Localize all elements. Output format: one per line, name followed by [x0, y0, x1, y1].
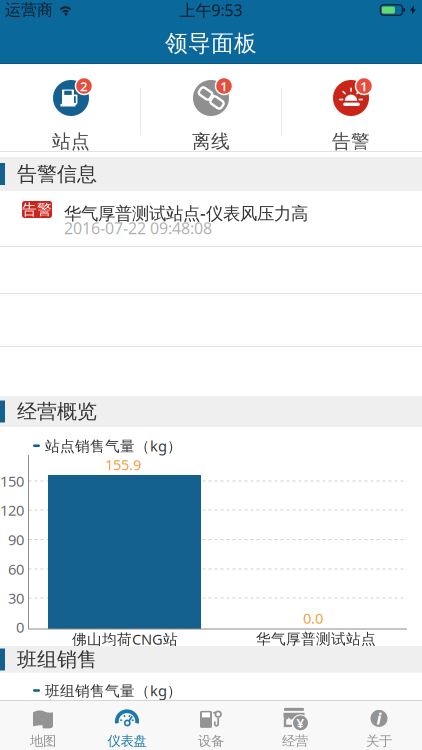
button[interactable]: 1 [141, 64, 281, 151]
button[interactable]: 设备 [169, 701, 253, 750]
staticText: 90 [8, 530, 24, 549]
staticText: 60 [8, 559, 24, 579]
staticText: 站点 [52, 130, 90, 153]
staticText: 仪表盘 [107, 733, 146, 749]
staticText: 领导面板 [165, 30, 257, 57]
staticText: 155.9 [105, 455, 141, 474]
button[interactable]: 地图 [1, 701, 85, 750]
staticText: i [376, 708, 381, 729]
staticText: 告警 [22, 200, 52, 218]
staticText: 1 [360, 77, 368, 95]
staticText: 0.0 [303, 608, 323, 628]
staticText: 华气厚普测试站点 [256, 630, 376, 648]
staticText: 离线 [192, 130, 230, 153]
button[interactable]: 告警 [0, 191, 422, 247]
staticText: 0 [16, 617, 24, 637]
button[interactable]: 仪表盘 [85, 701, 169, 750]
staticText: 30 [8, 588, 24, 608]
staticText: 150 [0, 471, 24, 491]
staticText: 经营概览 [17, 399, 97, 424]
button[interactable]: ¥ [253, 701, 337, 750]
button[interactable]: 1 [281, 64, 421, 151]
staticText: 运营商 [5, 0, 53, 20]
staticText: 佛山均荷CNG站 [72, 629, 178, 649]
staticText: 地图 [30, 733, 56, 749]
staticText: 告警信息 [17, 162, 97, 186]
staticText: 上午9:53 [179, 0, 242, 21]
staticText: 班组销售 [17, 647, 97, 672]
staticText: ¥ [296, 714, 304, 732]
staticText: 班组销售气量（kg） [45, 681, 182, 700]
staticText: 站点销售气量（kg） [45, 436, 182, 455]
staticText: 1 [220, 77, 228, 95]
staticText: 告警 [332, 130, 370, 153]
button[interactable]: 2 [1, 64, 141, 151]
staticText: 2 [80, 77, 88, 95]
staticText: 华气厚普测试站点-仪表风压力高 [64, 201, 308, 224]
staticText: 关于 [366, 733, 392, 749]
staticText: 120 [0, 500, 24, 520]
staticText: 设备 [198, 733, 224, 749]
button[interactable]: i [337, 701, 421, 750]
staticText: 经营 [282, 733, 308, 749]
staticText: 2016-07-22 09:48:08 [64, 217, 212, 239]
